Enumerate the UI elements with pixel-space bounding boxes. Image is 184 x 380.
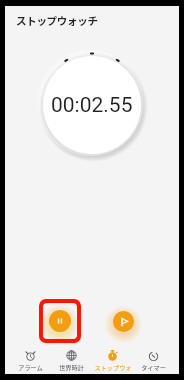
button[interactable]: 一時停止 xyxy=(43,303,77,339)
staticText: 00:02.55 xyxy=(51,93,133,118)
staticText: 世界時計 xyxy=(59,363,84,372)
staticText: アラーム xyxy=(18,363,43,372)
staticText: ストップウォッチ xyxy=(16,13,98,28)
button[interactable]: ストップウォ xyxy=(92,349,133,374)
button[interactable]: 世界時計 xyxy=(51,349,92,374)
staticText: タイマー xyxy=(141,363,166,372)
button[interactable]: アラーム xyxy=(10,349,51,374)
button[interactable]: タイマー xyxy=(133,349,174,374)
button[interactable]: ラップ xyxy=(113,311,134,332)
staticText: ストップウォ xyxy=(94,363,132,372)
